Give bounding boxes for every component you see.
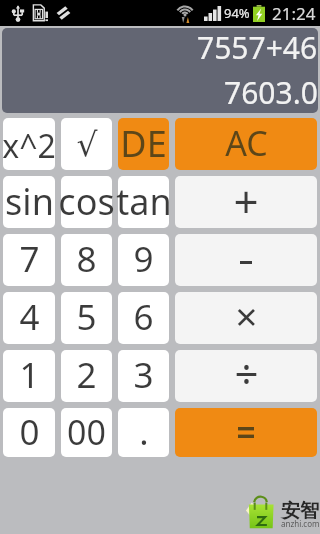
button[interactable]: 4 <box>0 289 58 347</box>
button[interactable]: sin <box>0 173 58 231</box>
staticText: 8 <box>76 235 97 283</box>
button[interactable] <box>172 405 320 460</box>
staticText: 7 <box>19 235 40 283</box>
staticText: 94% <box>224 4 250 22</box>
staticText: AC <box>225 120 268 166</box>
button[interactable]: 2 <box>58 347 115 405</box>
button[interactable]: ÷ <box>172 347 320 405</box>
button[interactable]: . <box>115 405 172 460</box>
staticText: 1 <box>19 351 40 399</box>
staticText: 0 <box>19 408 40 456</box>
staticText: ÷ <box>234 344 259 401</box>
button[interactable] <box>172 231 320 289</box>
button[interactable]: √ <box>58 115 115 173</box>
button[interactable]: 3 <box>115 347 172 405</box>
button[interactable]: tan <box>115 173 172 231</box>
staticText: 7557+46 <box>197 28 318 68</box>
button[interactable]: DE <box>115 115 172 173</box>
button[interactable]: 0 <box>0 405 58 460</box>
staticText: . <box>139 408 149 456</box>
button[interactable]: 7 <box>0 231 58 289</box>
button[interactable]: × <box>172 289 320 347</box>
staticText: 9 <box>133 235 154 283</box>
staticText: 6 <box>133 293 154 341</box>
staticText: + <box>233 171 259 231</box>
staticText: 2 <box>76 351 97 399</box>
staticText: 4 <box>19 293 40 341</box>
staticText: 21:24 <box>272 2 316 25</box>
staticText: sin <box>5 177 54 226</box>
button[interactable]: cos <box>58 173 115 231</box>
staticText: √ <box>76 125 98 163</box>
staticText: 3 <box>133 351 154 399</box>
button[interactable]: AC <box>172 115 320 173</box>
button[interactable]: 1 <box>0 347 58 405</box>
staticText: 00 <box>67 409 106 455</box>
button[interactable]: 8 <box>58 231 115 289</box>
staticText: 5 <box>76 293 97 341</box>
staticText: 7603.0 <box>224 72 318 112</box>
button[interactable]: 6 <box>115 289 172 347</box>
staticText: cos <box>58 177 115 226</box>
button[interactable]: 00 <box>58 405 115 460</box>
button[interactable]: + <box>172 173 320 231</box>
staticText: 安智 <box>281 499 319 523</box>
button[interactable]: 9 <box>115 231 172 289</box>
staticText: anzhi.com <box>281 518 320 529</box>
staticText: DE <box>120 119 167 168</box>
staticText: x^2 <box>2 124 56 168</box>
staticText: tan <box>116 177 172 226</box>
button[interactable]: 5 <box>58 289 115 347</box>
staticText: × <box>235 289 258 342</box>
button[interactable]: x^2 <box>0 115 58 173</box>
